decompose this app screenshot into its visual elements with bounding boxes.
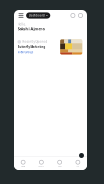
button[interactable]: Chat [50,157,69,170]
staticText: View Group [17,50,33,54]
button[interactable]: Search [70,12,76,18]
button[interactable]: Recently Opened [14,39,87,54]
staticText: Search [38,165,44,167]
staticText: Sakshi Ajmera [17,26,44,31]
staticText: You [76,165,79,167]
staticText: Dashboard [29,14,45,17]
staticText: Recently Opened [22,40,47,43]
staticText: Butterfly Marketing [17,45,45,49]
button[interactable]: Home [14,157,32,170]
staticText: Home [21,165,25,167]
button[interactable]: New [79,153,84,158]
button[interactable]: Dashboard [26,12,50,18]
button[interactable]: Notifications [77,12,83,18]
button[interactable]: Menu [17,12,24,19]
staticText: Hello, [17,23,26,26]
staticText: ▾ [46,14,47,17]
button[interactable]: Search [32,157,50,170]
button[interactable]: You [69,157,87,170]
